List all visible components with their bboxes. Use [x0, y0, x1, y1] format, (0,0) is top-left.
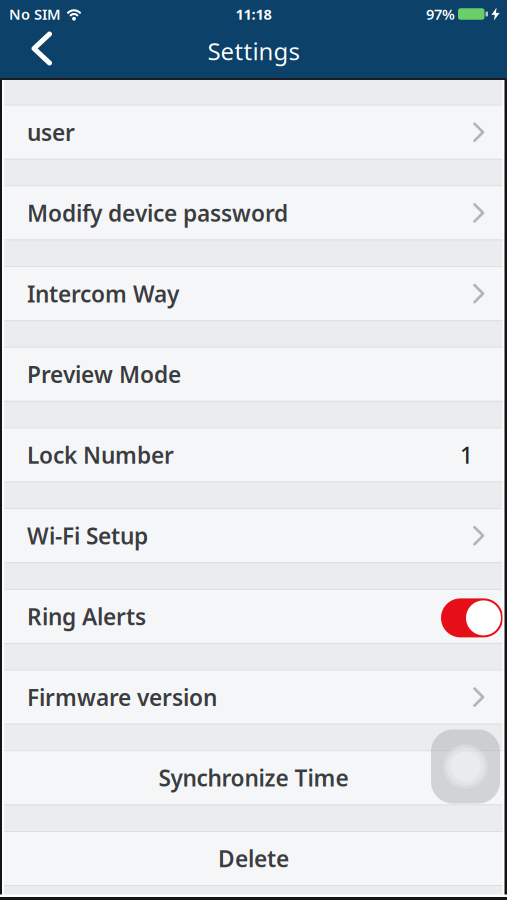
staticText: Lock Number	[27, 440, 174, 470]
staticText: user	[27, 117, 75, 147]
staticText: Delete	[218, 843, 289, 873]
staticText: 97%	[426, 4, 455, 24]
staticText: No SIM	[9, 4, 61, 24]
staticText: Synchronize Time	[158, 763, 348, 793]
staticText: Settings	[207, 35, 299, 67]
staticText: Preview Mode	[27, 359, 181, 389]
staticText: Wi-Fi Setup	[27, 521, 148, 551]
staticText: Modify device password	[27, 198, 288, 228]
staticText: 11:18	[235, 4, 271, 24]
staticText: Firmware version	[27, 682, 217, 712]
staticText: Intercom Way	[27, 278, 179, 309]
staticText: 1	[460, 440, 473, 470]
staticText: Ring Alerts	[27, 601, 146, 631]
